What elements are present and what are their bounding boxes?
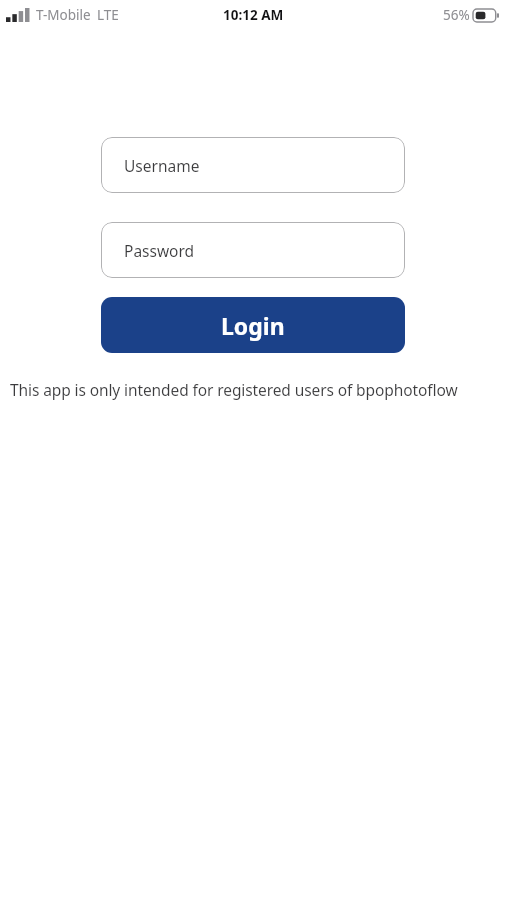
button[interactable]: Username [101,137,405,193]
staticText: Username [124,155,200,176]
staticText: LTE [97,6,119,24]
staticText: 56% [443,6,470,24]
staticText: T-Mobile [36,6,91,24]
other: Battery 56 percent [473,9,499,22]
staticText: 10:12 AM [223,6,284,24]
staticText: This app is only intended for registered… [10,379,502,400]
staticText: Password [124,240,195,261]
button[interactable]: Password [101,222,405,278]
staticText: Login [221,310,285,341]
button[interactable]: Login [101,297,405,353]
